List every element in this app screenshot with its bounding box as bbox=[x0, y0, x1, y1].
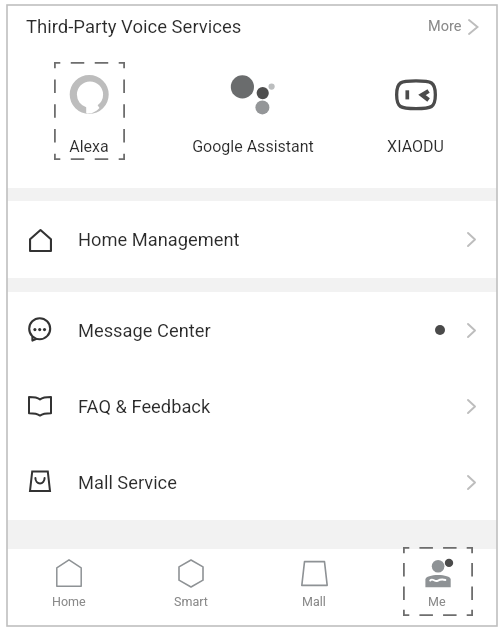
staticText: Smart bbox=[174, 594, 208, 609]
staticText: More bbox=[428, 18, 462, 35]
button[interactable]: FAQ & Feedback bbox=[7, 368, 497, 444]
button[interactable]: Message Center bbox=[7, 292, 497, 368]
staticText: Mall bbox=[302, 594, 326, 609]
staticText: Home Management bbox=[78, 229, 240, 250]
button[interactable]: More bbox=[426, 14, 481, 39]
staticText: Third-Party Voice Services bbox=[26, 16, 242, 38]
staticText: Google Assistant bbox=[192, 137, 314, 156]
button[interactable]: Mall Service bbox=[7, 444, 497, 520]
staticText: XIAODU bbox=[387, 137, 444, 156]
button[interactable]: XIAODU bbox=[334, 48, 497, 188]
button[interactable]: Me bbox=[374, 549, 497, 626]
button[interactable]: Home bbox=[7, 549, 129, 626]
button[interactable]: Mall bbox=[251, 549, 374, 626]
staticText: Message Center bbox=[78, 320, 211, 341]
button[interactable]: Google Assistant bbox=[171, 48, 334, 188]
button[interactable]: Alexa bbox=[7, 48, 171, 188]
staticText: Alexa bbox=[69, 137, 109, 156]
button[interactable]: Smart bbox=[129, 549, 251, 626]
staticText: Home bbox=[52, 594, 86, 609]
button[interactable]: Home Management bbox=[7, 201, 497, 278]
staticText: Mall Service bbox=[78, 472, 177, 493]
staticText: FAQ & Feedback bbox=[78, 396, 211, 417]
staticText: Me bbox=[428, 594, 446, 609]
